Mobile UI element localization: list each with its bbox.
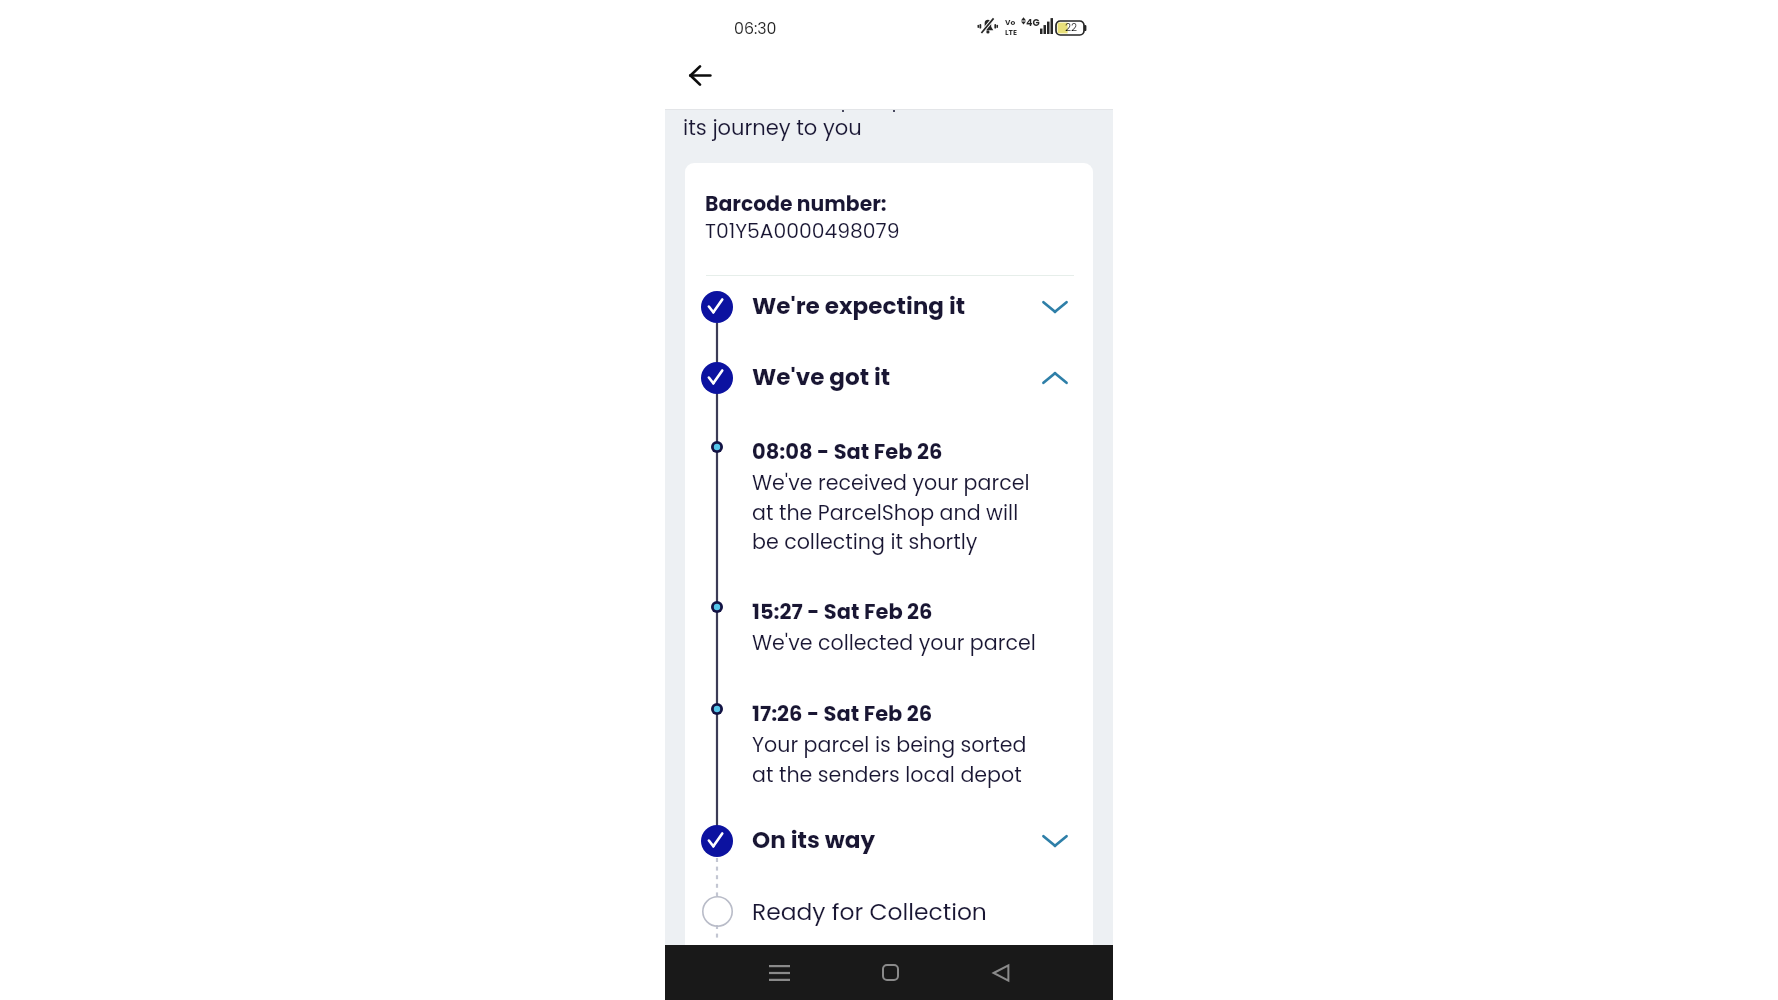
staticText: 06:30 <box>734 17 777 39</box>
staticText: at the ParcelShop and will <box>752 498 1019 527</box>
staticText: Vo <box>1005 17 1016 27</box>
staticText: its journey to you <box>683 113 862 142</box>
button[interactable]: We're expecting it <box>697 285 1090 329</box>
button[interactable]: Ready for Collection <box>697 889 997 933</box>
staticText: On its way <box>752 824 876 856</box>
staticText: Your parcel is being sorted <box>752 730 1027 759</box>
staticText: 15:27 - Sat Feb 26 <box>752 597 933 626</box>
button[interactable]: We've got it <box>697 356 1090 400</box>
staticText: We've collected your parcel <box>752 628 1036 657</box>
button[interactable]: Back <box>977 952 1025 993</box>
button[interactable]: Recent apps <box>755 952 803 993</box>
staticText: LTE <box>1005 27 1018 37</box>
staticText: We've received your parcel <box>752 468 1030 497</box>
button[interactable]: Back <box>682 57 718 93</box>
button[interactable]: On its way <box>697 819 1090 863</box>
staticText: We're expecting it <box>752 290 966 322</box>
staticText: Barcode number: <box>705 190 887 218</box>
staticText: T01Y5A0000498079 <box>705 217 900 245</box>
staticText: We've got it <box>752 361 891 393</box>
staticText: 17:26 - Sat Feb 26 <box>752 699 933 728</box>
staticText: Ready for Collection <box>752 895 987 928</box>
staticText: 22 <box>1065 20 1078 35</box>
staticText: at the senders local depot <box>752 760 1022 789</box>
staticText: be collecting it shortly <box>752 527 978 556</box>
staticText: 4G <box>1026 16 1040 29</box>
staticText: 08:08 - Sat Feb 26 <box>752 437 943 466</box>
button[interactable]: Home <box>866 952 914 993</box>
